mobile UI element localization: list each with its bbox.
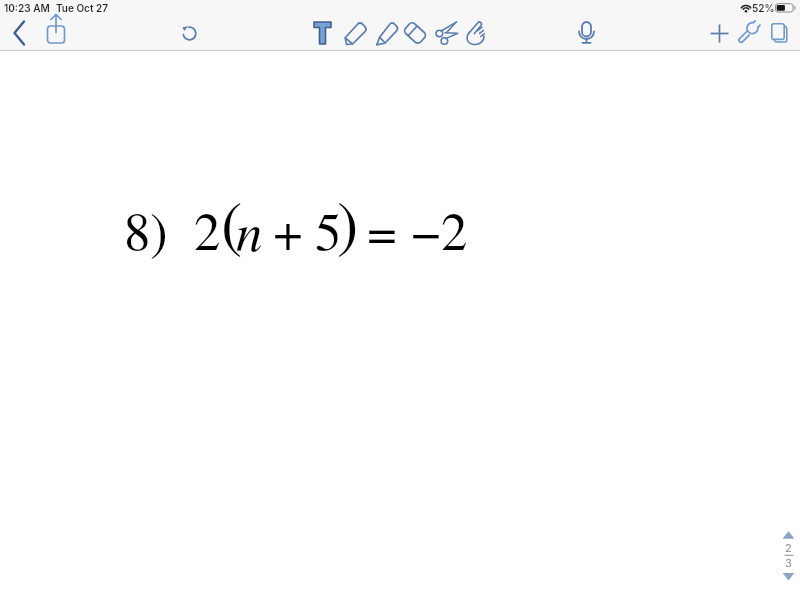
staticText: 52% xyxy=(752,2,775,14)
staticText: − xyxy=(411,194,441,265)
button[interactable] xyxy=(12,20,28,46)
button[interactable] xyxy=(313,21,332,46)
button[interactable] xyxy=(710,24,729,43)
staticText: = xyxy=(367,194,397,265)
staticText: ) xyxy=(150,194,168,265)
staticText: 2 xyxy=(194,194,221,265)
staticText: 10:23 AM xyxy=(4,2,50,14)
button[interactable] xyxy=(46,13,66,45)
button[interactable] xyxy=(344,21,367,46)
staticText: ( xyxy=(221,178,243,264)
staticText: 3 xyxy=(785,556,792,569)
button[interactable] xyxy=(403,21,427,45)
button[interactable] xyxy=(771,23,788,43)
staticText: 5 xyxy=(315,194,342,265)
staticText: Tue Oct 27 xyxy=(56,2,108,14)
staticText: ) xyxy=(337,178,359,264)
button[interactable] xyxy=(375,21,398,46)
button[interactable] xyxy=(738,22,759,45)
button[interactable] xyxy=(578,21,595,45)
staticText: n xyxy=(236,194,263,265)
staticText: 8 xyxy=(124,194,151,265)
button[interactable] xyxy=(433,20,460,46)
staticText: + xyxy=(273,194,303,265)
button[interactable] xyxy=(465,20,487,46)
button[interactable] xyxy=(182,26,197,41)
staticText: 2 xyxy=(441,194,468,265)
button[interactable] xyxy=(780,528,798,584)
staticText: 2 xyxy=(785,541,792,554)
